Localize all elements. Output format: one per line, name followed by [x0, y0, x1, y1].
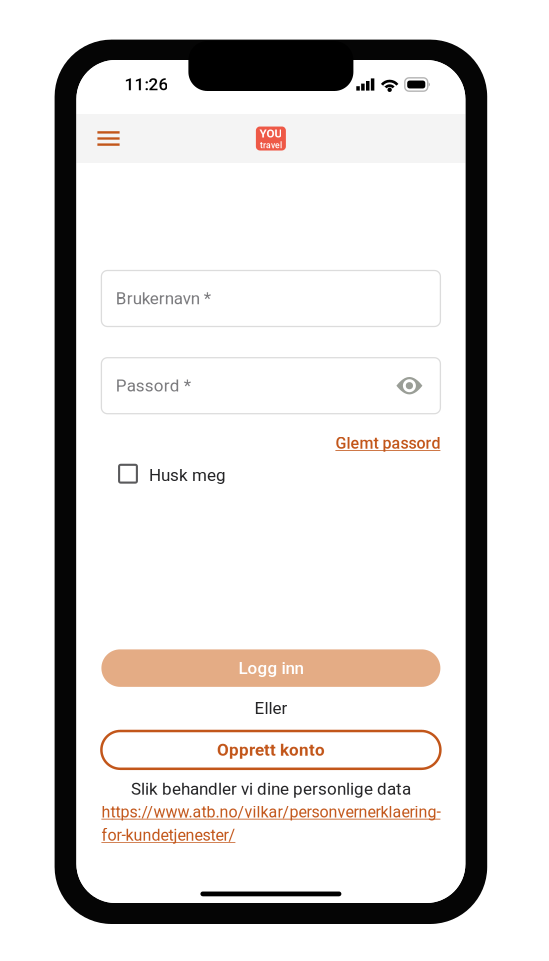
staticText: 11:26 — [124, 74, 168, 94]
staticText: Logg inn — [238, 658, 303, 678]
staticText: Husk meg — [149, 465, 226, 485]
staticText: Opprett konto — [217, 740, 325, 760]
button[interactable]: Glemt passord — [335, 434, 440, 453]
staticText: Glemt passord — [335, 434, 440, 453]
button[interactable]: Logg inn — [101, 649, 440, 687]
button[interactable]: Opprett konto — [101, 731, 440, 769]
staticText: Passord * — [116, 376, 191, 396]
staticText: travel — [260, 140, 282, 150]
staticText: Eller — [254, 698, 287, 718]
button[interactable]: Menu — [76, 114, 134, 163]
staticText: Brukernavn * — [116, 288, 211, 308]
staticText: YOU — [259, 127, 282, 140]
button[interactable]: https://www.atb.no/vilkar/personvernerkl… — [101, 803, 440, 845]
button[interactable]: Show password — [396, 377, 422, 395]
staticText: Slik behandler vi dine personlige data — [131, 779, 411, 799]
button[interactable]: Husk meg — [119, 465, 226, 485]
staticText: https://www.atb.no/vilkar/personvernerkl… — [101, 803, 440, 845]
